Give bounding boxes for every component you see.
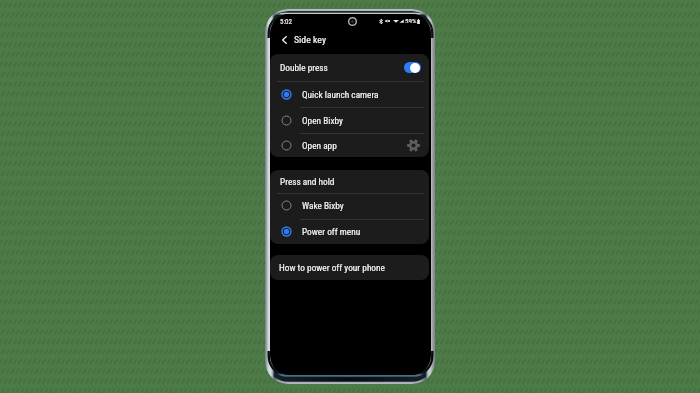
staticText: Wake Bixby <box>302 200 344 211</box>
button[interactable]: Open Bixby <box>270 107 429 133</box>
button[interactable]: Side key <box>294 31 326 48</box>
staticText: Open app <box>302 140 337 151</box>
button[interactable]: How to power off your phone <box>270 255 429 280</box>
staticText: Power off menu <box>302 226 361 237</box>
staticText: How to power off your phone <box>279 262 385 273</box>
button[interactable]: Double press <box>270 54 429 81</box>
staticText: Quick launch camera <box>302 89 379 100</box>
button[interactable]: Quick launch camera <box>270 81 429 107</box>
button[interactable]: Open app <box>270 133 429 157</box>
button[interactable]: Double press toggle <box>404 62 421 73</box>
staticText: 5:02 <box>280 18 293 26</box>
staticText: Double press <box>280 62 328 73</box>
button[interactable]: Back <box>277 31 291 48</box>
button[interactable]: Open app settings <box>405 137 421 153</box>
button[interactable]: Power off menu <box>270 219 429 244</box>
staticText: Open Bixby <box>302 115 343 126</box>
button[interactable]: Wake Bixby <box>270 193 429 218</box>
staticText: 59% <box>405 18 417 23</box>
staticText: Press and hold <box>280 176 335 187</box>
staticText: Side key <box>294 34 326 45</box>
